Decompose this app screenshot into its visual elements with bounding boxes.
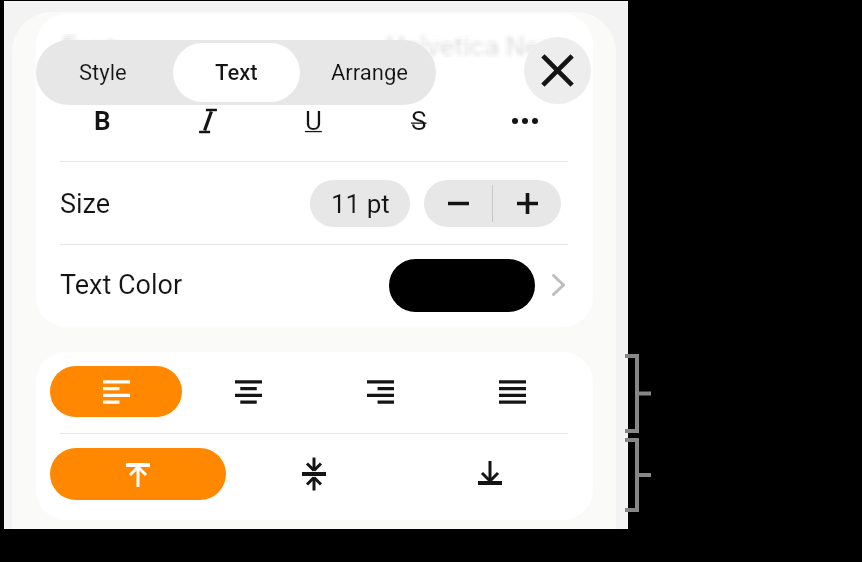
staticText: Helvetica Neue	[391, 33, 574, 65]
staticText: Helvetica Neue	[385, 33, 568, 65]
staticText: U	[305, 106, 322, 136]
staticText: B	[94, 106, 111, 136]
staticText: Font	[62, 31, 116, 63]
staticText: Font	[65, 33, 119, 65]
staticText: Helvetica Neue	[389, 33, 572, 65]
staticText: Helvetica Neue	[388, 33, 571, 65]
button[interactable]: Increase size	[493, 180, 561, 227]
button[interactable]: Close	[524, 37, 591, 104]
staticText: Helvetica Neue	[382, 29, 565, 61]
staticText: Helvetica Neue	[387, 31, 570, 63]
staticText: Helvetica Neue	[385, 31, 568, 63]
button[interactable]: Align top	[50, 448, 226, 500]
staticText: Font	[58, 31, 112, 63]
staticText: Helvetica Neue	[391, 29, 574, 61]
button[interactable]: Align left	[50, 366, 182, 417]
staticText: Font	[58, 31, 112, 63]
staticText: Helvetica Neue	[387, 29, 570, 61]
staticText: Helvetica Neue	[382, 31, 565, 63]
staticText: Font	[64, 33, 118, 65]
staticText: Helvetica Neue	[382, 33, 565, 65]
staticText: Font	[63, 31, 117, 63]
staticText: Helvetica Neue	[388, 31, 571, 63]
staticText: Helvetica Neue	[390, 29, 573, 61]
button[interactable]: Style	[39, 43, 167, 102]
button[interactable]: Align center	[218, 366, 278, 417]
staticText: Font	[61, 31, 115, 63]
button[interactable]: Decrease size	[424, 180, 492, 227]
staticText: 11 pt	[331, 189, 390, 219]
staticText: Style	[79, 60, 127, 86]
staticText: Text	[215, 60, 258, 86]
staticText: Helvetica Neue	[382, 29, 565, 61]
staticText: Helvetica Neue	[383, 29, 566, 61]
staticText: Font	[61, 29, 115, 61]
staticText: Helvetica Neue	[382, 33, 565, 65]
staticText: Font	[60, 33, 114, 65]
staticText: Helvetica Neue	[386, 31, 569, 63]
button[interactable]: Align bottom	[460, 448, 520, 500]
staticText: Helvetica Neue	[382, 31, 565, 63]
staticText: Helvetica Neue	[383, 31, 566, 63]
staticText: Helvetica Neue	[389, 31, 572, 63]
staticText: Font	[65, 31, 119, 63]
staticText: Helvetica Neue	[386, 33, 569, 65]
staticText: Font	[66, 29, 120, 61]
staticText: Font	[66, 33, 120, 65]
staticText: Font	[59, 33, 113, 65]
staticText: Font	[65, 29, 119, 61]
staticText: Arrange	[331, 60, 408, 86]
staticText: Font	[58, 29, 112, 61]
button[interactable]: More	[472, 98, 578, 144]
staticText: Font	[58, 33, 112, 65]
staticText: Helvetica Neue	[384, 31, 567, 63]
staticText: Font	[59, 29, 113, 61]
staticText: Font	[61, 33, 115, 65]
staticText: Helvetica Neue	[384, 29, 567, 61]
button[interactable]: Arrange	[306, 43, 433, 102]
staticText: Font	[60, 29, 114, 61]
staticText: S	[411, 106, 427, 136]
staticText: Helvetica Neue	[390, 31, 573, 63]
staticText: Helvetica Neue	[386, 29, 569, 61]
button[interactable]: Underline	[260, 98, 366, 144]
staticText: Font	[59, 31, 113, 63]
staticText: Helvetica Neue	[391, 31, 574, 63]
staticText: Text Color	[60, 269, 183, 301]
staticText: Helvetica Neue	[388, 29, 571, 61]
button[interactable]: Text Color	[60, 245, 565, 325]
staticText: Font	[67, 31, 121, 63]
staticText: Font	[62, 33, 116, 65]
staticText: Font	[67, 33, 121, 65]
staticText: Helvetica Neue	[383, 33, 566, 65]
button[interactable]: Align right	[350, 366, 410, 417]
button[interactable]: Italic	[155, 98, 260, 144]
button[interactable]: Text	[173, 43, 300, 102]
staticText: Helvetica Neue	[390, 33, 573, 65]
button[interactable]: Align middle	[284, 448, 344, 500]
button[interactable]: 11 pt	[310, 180, 410, 227]
staticText: Font	[67, 29, 121, 61]
staticText: Helvetica Neue	[389, 29, 572, 61]
button[interactable]: Justify	[482, 366, 542, 417]
staticText: Font	[58, 29, 112, 61]
staticText: Helvetica Neue	[385, 29, 568, 61]
staticText: Font	[64, 29, 118, 61]
staticText: Helvetica Neue	[384, 33, 567, 65]
staticText: Font	[64, 31, 118, 63]
staticText: Font	[63, 33, 117, 65]
staticText: Size	[60, 188, 111, 220]
staticText: Font	[63, 29, 117, 61]
staticText: Font	[58, 33, 112, 65]
staticText: Font	[66, 31, 120, 63]
button[interactable]: Strikethrough	[366, 98, 472, 144]
button[interactable]: Bold	[50, 98, 155, 144]
staticText: Font	[60, 31, 114, 63]
staticText: Helvetica Neue	[387, 33, 570, 65]
staticText: Font	[62, 29, 116, 61]
